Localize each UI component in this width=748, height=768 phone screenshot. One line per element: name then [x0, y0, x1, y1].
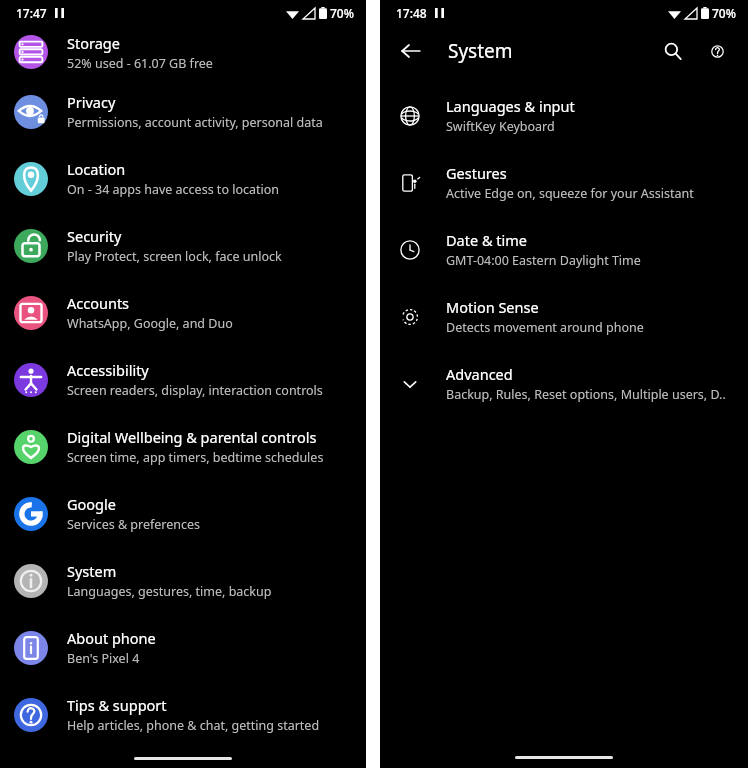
staticText: Languages & input — [446, 96, 575, 116]
staticText: Privacy — [67, 92, 116, 112]
staticText: Security — [67, 226, 122, 246]
staticText: Gestures — [446, 163, 507, 183]
button[interactable]: Digital Wellbeing & parental controls — [0, 413, 366, 480]
staticText: Backup, Rules, Reset options, Multiple u… — [446, 386, 726, 403]
staticText: System — [448, 38, 513, 64]
staticText: SwiftKey Keyboard — [446, 118, 555, 135]
staticText: About phone — [67, 628, 156, 648]
staticText: 70% — [712, 5, 736, 21]
staticText: WhatsApp, Google, and Duo — [67, 315, 233, 332]
staticText: Active Edge on, squeeze for your Assista… — [446, 185, 694, 202]
staticText: Accessibility — [67, 360, 149, 380]
button[interactable]: Languages & input — [380, 82, 748, 149]
staticText: System — [67, 561, 117, 581]
button[interactable]: Motion Sense — [380, 283, 748, 350]
button[interactable]: System — [0, 547, 366, 614]
staticText: Screen readers, display, interaction con… — [67, 382, 323, 399]
staticText: Location — [67, 159, 126, 179]
staticText: Permissions, account activity, personal … — [67, 114, 323, 131]
button[interactable]: Advanced — [380, 350, 748, 417]
button[interactable]: Accounts — [0, 279, 366, 346]
staticText: Digital Wellbeing & parental controls — [67, 427, 317, 447]
staticText: Help articles, phone & chat, getting sta… — [67, 717, 320, 734]
button[interactable]: Search — [656, 34, 690, 68]
button[interactable]: Security — [0, 212, 366, 279]
button[interactable]: Date & time — [380, 216, 748, 283]
staticText: 17:47 — [16, 5, 47, 21]
button[interactable]: Google — [0, 480, 366, 547]
staticText: Screen time, app timers, bedtime schedul… — [67, 449, 324, 466]
staticText: Advanced — [446, 364, 513, 384]
staticText: 52% used - 61.07 GB free — [67, 55, 213, 72]
staticText: Google — [67, 494, 116, 514]
staticText: Tips & support — [67, 695, 167, 715]
staticText: Languages, gestures, time, backup — [67, 583, 272, 600]
button[interactable]: Accessibility — [0, 346, 366, 413]
button[interactable]: Gestures — [380, 149, 748, 216]
button[interactable]: Privacy — [0, 78, 366, 145]
staticText: 17:48 — [396, 5, 427, 21]
staticText: Play Protect, screen lock, face unlock — [67, 248, 282, 265]
staticText: On - 34 apps have access to location — [67, 181, 280, 198]
staticText: Accounts — [67, 293, 130, 313]
button[interactable]: Tips & support — [0, 681, 366, 748]
button[interactable]: About phone — [0, 614, 366, 681]
button[interactable]: Back — [394, 34, 428, 68]
staticText: GMT-04:00 Eastern Daylight Time — [446, 252, 641, 269]
button[interactable]: Help — [700, 34, 734, 68]
staticText: Motion Sense — [446, 297, 539, 317]
staticText: Detects movement around phone — [446, 319, 644, 336]
staticText: 70% — [330, 5, 354, 21]
staticText: Services & preferences — [67, 516, 201, 533]
button[interactable]: Storage — [0, 26, 366, 78]
staticText: Storage — [67, 33, 120, 53]
staticText: Date & time — [446, 230, 527, 250]
button[interactable]: Location — [0, 145, 366, 212]
staticText: Ben's Pixel 4 — [67, 650, 140, 667]
